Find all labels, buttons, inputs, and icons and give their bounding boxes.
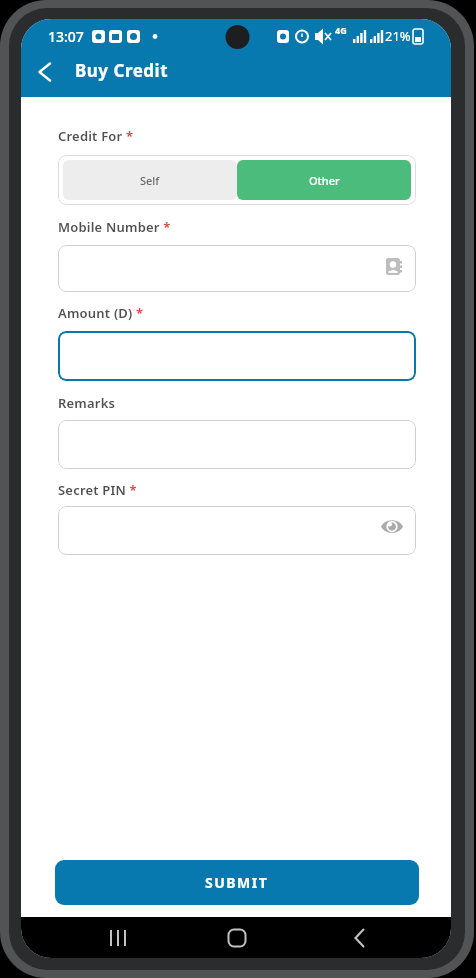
staticText: Buy Credit	[75, 59, 169, 82]
staticText: 4G	[335, 24, 347, 36]
button[interactable]	[58, 245, 416, 292]
staticText: Amount (D) *	[58, 304, 144, 322]
staticText: Remarks	[58, 394, 116, 412]
staticText: SUBMIT	[205, 873, 269, 892]
button[interactable]: Self	[63, 160, 237, 200]
button[interactable]: Other	[237, 160, 411, 200]
button[interactable]	[338, 919, 382, 956]
button[interactable]	[58, 506, 416, 555]
staticText: Secret PIN *	[58, 481, 137, 499]
button[interactable]	[215, 919, 259, 956]
staticText: Other	[309, 173, 340, 188]
staticText: Mobile Number *	[58, 218, 171, 236]
staticText: 13:07	[48, 27, 84, 46]
staticText: Self	[140, 173, 160, 188]
button[interactable]	[58, 331, 416, 381]
button[interactable]	[96, 919, 140, 956]
staticText: Credit For *	[58, 127, 134, 145]
button[interactable]: SUBMIT	[55, 860, 419, 905]
staticText: 21%	[385, 27, 411, 45]
button[interactable]	[29, 56, 61, 88]
button[interactable]	[58, 420, 416, 469]
